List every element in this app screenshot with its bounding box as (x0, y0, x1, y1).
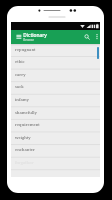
staticText: weighty (15, 135, 31, 141)
staticText: ethic (15, 59, 25, 65)
button[interactable]: carry (11, 69, 100, 82)
button[interactable]: Search (81, 31, 93, 43)
button[interactable]: forgather (11, 157, 100, 170)
staticText: carry (15, 72, 26, 78)
button[interactable]: infamy (11, 94, 100, 107)
button[interactable]: Open navigation drawer (14, 32, 25, 43)
button[interactable]: weighty (11, 132, 100, 145)
button[interactable]: requirement (11, 119, 100, 132)
staticText: Browse (23, 38, 34, 42)
button[interactable]: shamefully (11, 107, 100, 120)
staticText: repugnant (15, 47, 36, 53)
staticText: Dictionary (23, 32, 47, 39)
staticText: shamefully (15, 110, 37, 116)
staticText: enchanter (15, 147, 35, 153)
staticText: requirement (15, 122, 40, 128)
staticText: infamy (15, 97, 29, 103)
button[interactable]: sack (11, 82, 100, 95)
button[interactable]: enchanter (11, 145, 100, 158)
button[interactable]: More options (93, 31, 100, 43)
staticText: sack (15, 84, 24, 90)
button[interactable]: repugnant (11, 44, 100, 57)
staticText: forgather (15, 160, 34, 166)
button[interactable]: ethic (11, 57, 100, 70)
